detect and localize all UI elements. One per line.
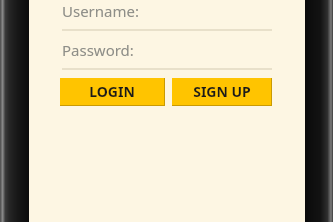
staticText: SIGN UP	[193, 82, 251, 101]
staticText: Username:	[62, 1, 139, 21]
staticText: LOGIN	[89, 82, 135, 101]
button[interactable]: SIGN UP	[172, 78, 271, 105]
button[interactable]: LOGIN	[60, 78, 164, 105]
staticText: Password:	[62, 40, 134, 60]
button[interactable]: Password:	[62, 40, 272, 70]
button[interactable]: Username:	[62, 0, 272, 31]
